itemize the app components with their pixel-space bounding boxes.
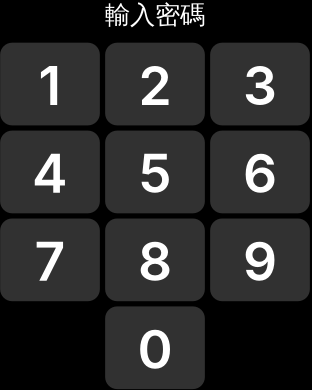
button[interactable]: 2 xyxy=(105,43,205,125)
staticText: 3 xyxy=(243,53,277,118)
staticText: 8 xyxy=(138,229,172,294)
staticText: 1 xyxy=(38,53,61,118)
button[interactable]: 3 xyxy=(210,43,310,125)
button[interactable]: 6 xyxy=(210,131,310,213)
button[interactable]: 9 xyxy=(210,218,310,301)
staticText: 9 xyxy=(243,229,277,294)
button[interactable]: 7 xyxy=(0,218,100,301)
button[interactable]: 1 xyxy=(0,43,100,125)
button[interactable]: 8 xyxy=(105,218,205,301)
staticText: 7 xyxy=(34,229,65,294)
button[interactable]: 0 xyxy=(105,306,205,389)
staticText: 輸入密碼 xyxy=(105,0,205,30)
staticText: 4 xyxy=(32,141,68,206)
staticText: 2 xyxy=(138,53,171,118)
staticText: 6 xyxy=(243,141,277,206)
button[interactable]: 5 xyxy=(105,131,205,213)
button[interactable]: 4 xyxy=(0,131,100,213)
staticText: 0 xyxy=(137,317,172,381)
staticText: 5 xyxy=(138,141,172,206)
